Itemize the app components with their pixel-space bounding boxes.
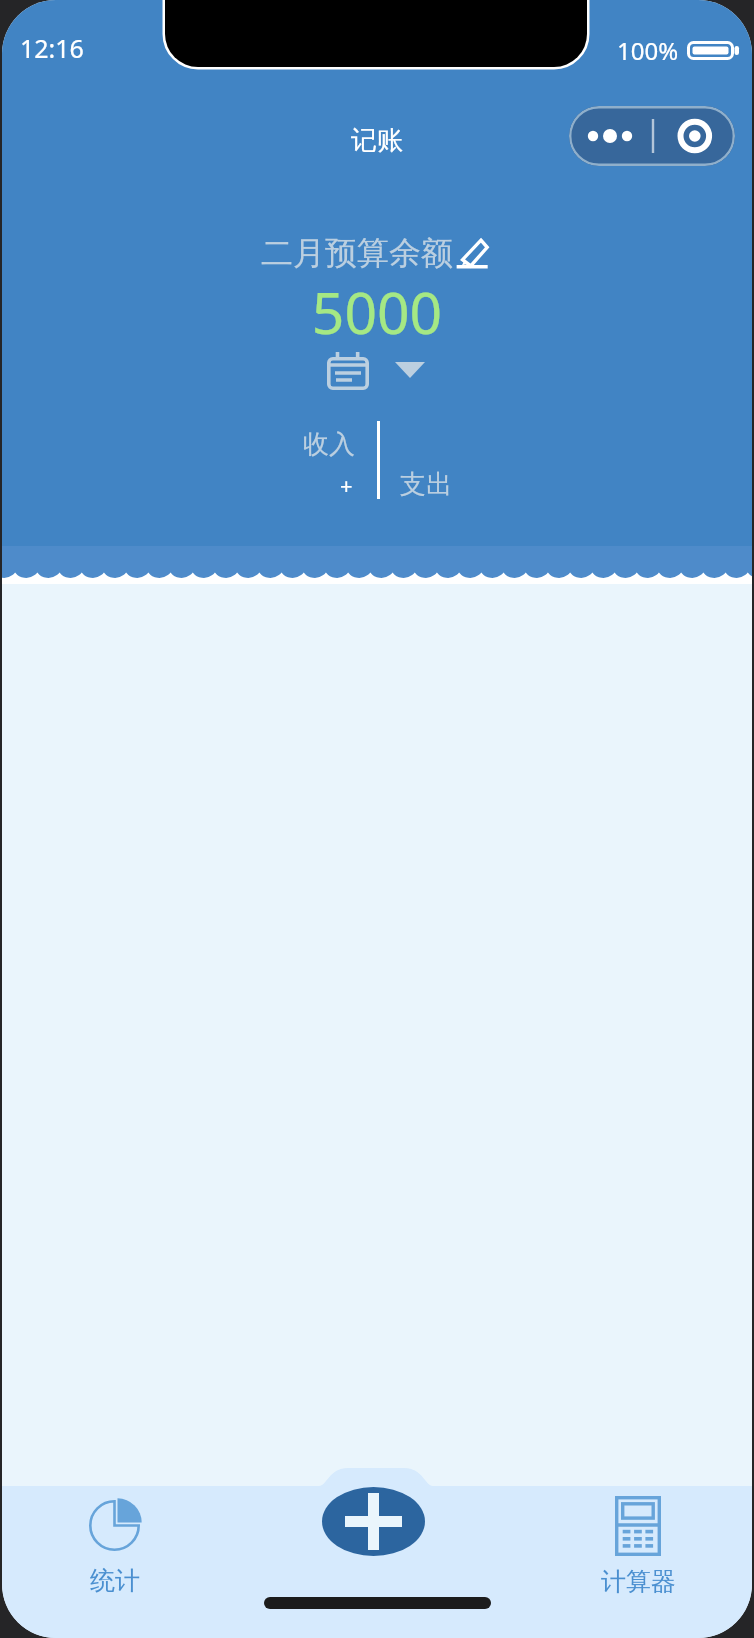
staticText: 100%: [617, 34, 679, 67]
button[interactable]: [395, 362, 425, 378]
staticText: 记账: [2, 124, 752, 157]
button[interactable]: 支出: [400, 468, 452, 501]
button[interactable]: Add record: [322, 1487, 425, 1556]
staticText: 5000: [2, 273, 752, 351]
staticText: 12:16: [20, 31, 84, 65]
button[interactable]: More options: [569, 106, 735, 166]
staticText: 二月预算余额: [261, 233, 453, 273]
staticText: 统计: [90, 1565, 140, 1596]
button[interactable]: 计算器: [581, 1496, 695, 1597]
staticText: +: [340, 470, 353, 500]
button[interactable]: 收入: [303, 428, 355, 461]
button[interactable]: 统计: [58, 1496, 172, 1596]
button[interactable]: [327, 352, 369, 390]
staticText: 计算器: [601, 1566, 676, 1597]
button[interactable]: 二月预算余额: [261, 233, 488, 273]
